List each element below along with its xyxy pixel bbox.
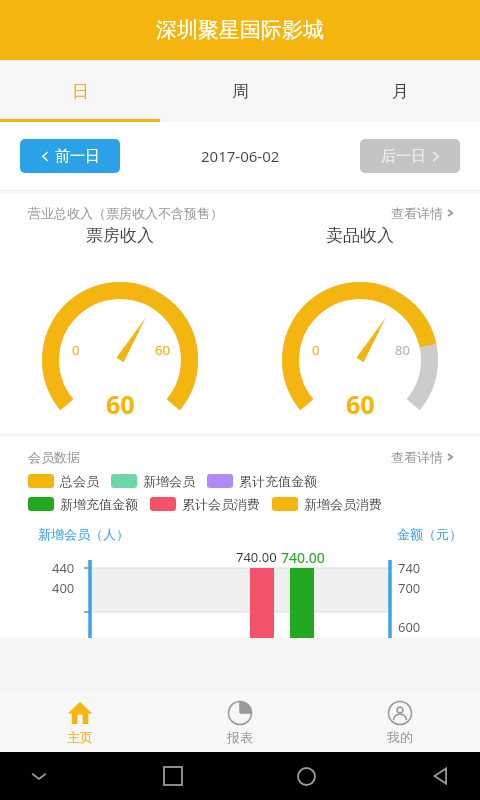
- staticText: 440: [52, 559, 75, 577]
- staticText: 新增会员（人）: [38, 526, 129, 542]
- button[interactable]: 查看详情: [391, 205, 454, 221]
- staticText: 日: [72, 81, 89, 102]
- staticText: 0: [72, 341, 80, 359]
- staticText: 740.00: [281, 548, 325, 567]
- staticText: 累计充值金额: [239, 473, 317, 489]
- staticText: 累计会员消费: [182, 496, 260, 512]
- staticText: 60: [155, 341, 170, 359]
- staticText: 主页: [67, 729, 93, 745]
- staticText: 查看详情: [391, 449, 443, 465]
- button[interactable]: 后一日: [360, 139, 460, 173]
- button[interactable]: 主页: [0, 692, 160, 752]
- staticText: 票房收入: [86, 225, 154, 246]
- button[interactable]: 日: [0, 60, 160, 122]
- button[interactable]: 月: [320, 60, 480, 122]
- button[interactable]: 查看详情: [391, 449, 454, 465]
- staticText: 营业总收入（票房收入不含预售）: [28, 205, 223, 221]
- staticText: 后一日: [381, 147, 426, 166]
- staticText: 740.00: [236, 548, 277, 566]
- staticText: 新增充值金额: [60, 496, 138, 512]
- staticText: 700: [398, 579, 421, 597]
- button[interactable]: 周: [160, 60, 320, 122]
- staticText: 卖品收入: [326, 225, 394, 246]
- staticText: 前一日: [55, 147, 100, 166]
- staticText: 60: [346, 387, 375, 421]
- staticText: 金额（元）: [397, 526, 462, 542]
- staticText: 报表: [227, 729, 253, 745]
- staticText: 总会员: [60, 473, 99, 489]
- staticText: 深圳聚星国际影城: [156, 17, 324, 43]
- staticText: 600: [398, 618, 421, 636]
- button[interactable]: 报表: [160, 692, 320, 752]
- button[interactable]: 我的: [320, 692, 480, 752]
- staticText: 新增会员消费: [304, 496, 382, 512]
- staticText: 0: [312, 341, 320, 359]
- staticText: 周: [232, 81, 249, 102]
- staticText: 我的: [387, 729, 413, 745]
- staticText: 查看详情: [391, 205, 443, 221]
- staticText: 80: [395, 341, 410, 359]
- staticText: 新增会员: [143, 473, 195, 489]
- staticText: 400: [52, 579, 75, 597]
- staticText: 会员数据: [28, 449, 80, 465]
- staticText: 2017-06-02: [201, 146, 280, 166]
- staticText: 月: [392, 81, 409, 102]
- staticText: 60: [106, 387, 135, 421]
- staticText: 740: [398, 559, 421, 577]
- button[interactable]: 前一日: [20, 139, 120, 173]
